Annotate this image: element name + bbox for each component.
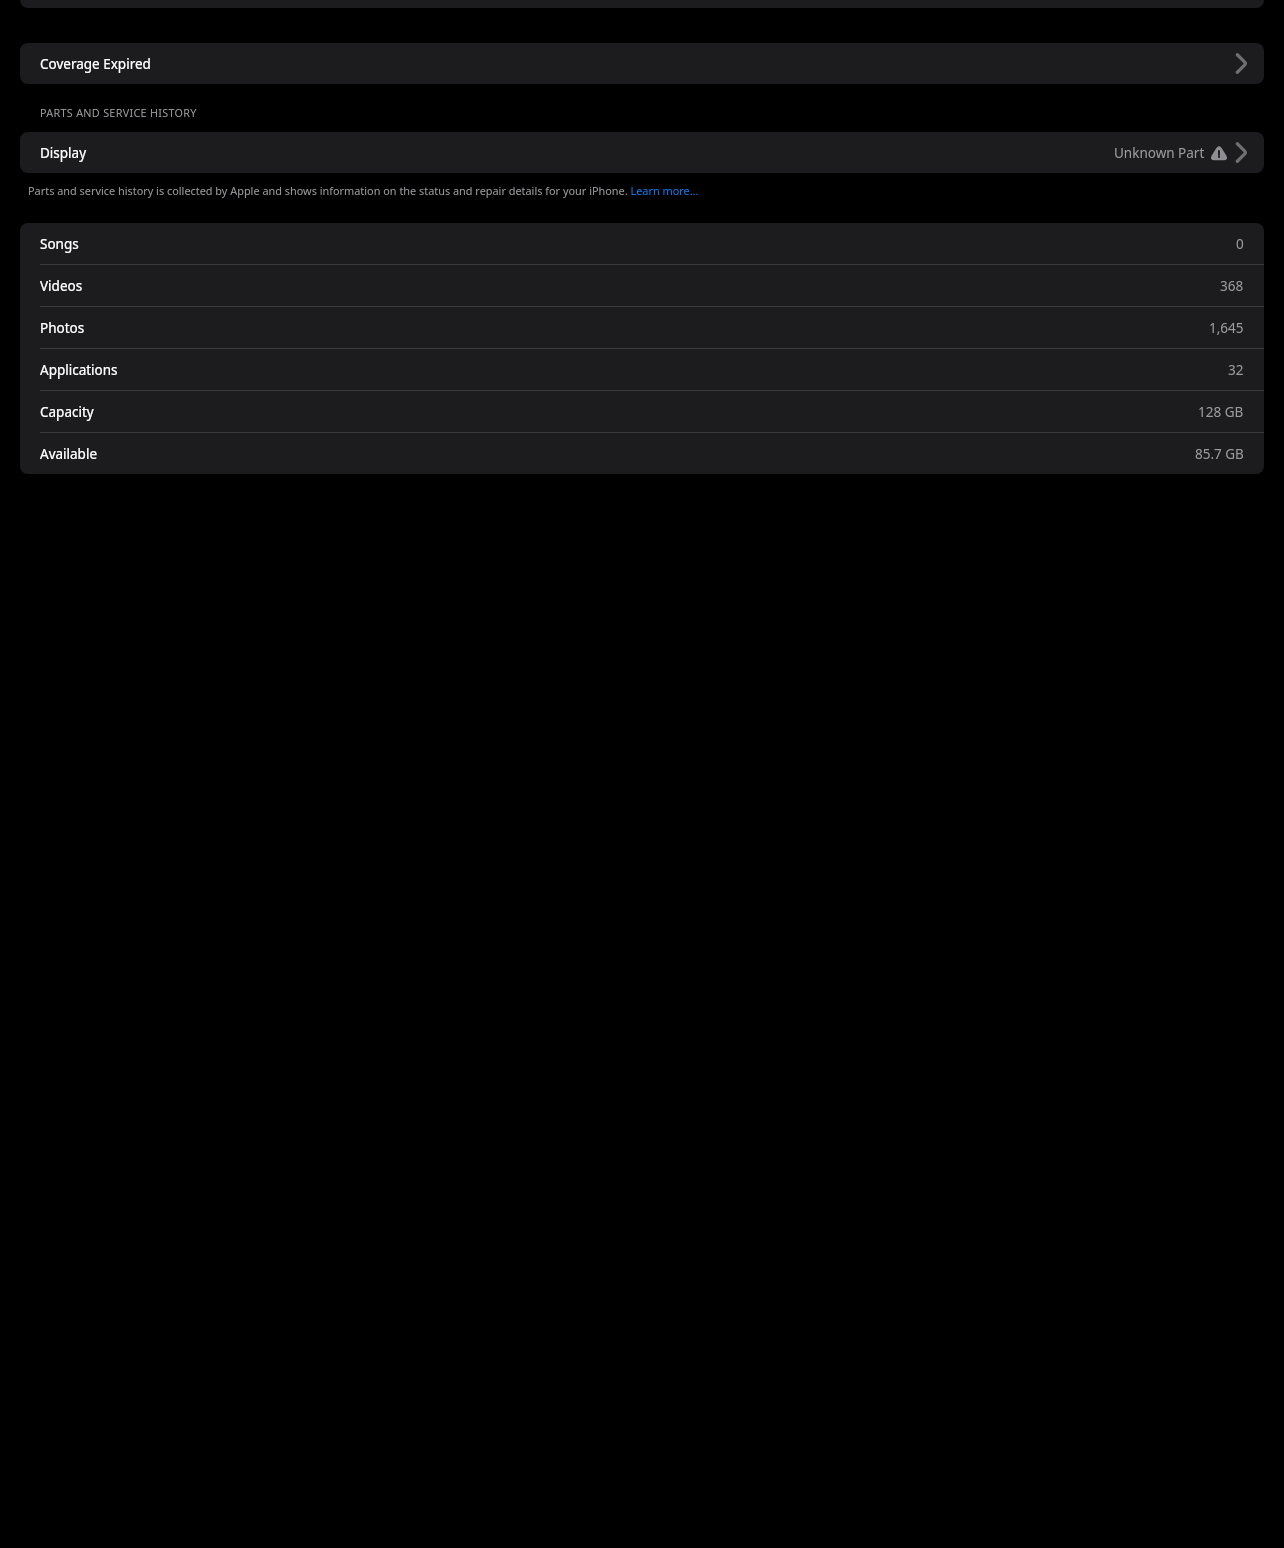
staticText: Photos <box>40 319 85 337</box>
staticText: 85.7 GB <box>1195 445 1244 463</box>
staticText: Songs <box>40 235 79 253</box>
staticText: 1,645 <box>1209 319 1244 337</box>
staticText: 128 GB <box>1198 403 1244 421</box>
staticText: Applications <box>40 361 118 379</box>
button[interactable]: Capacity <box>20 391 1264 432</box>
staticText: 32 <box>1228 361 1244 379</box>
button[interactable]: Applications <box>20 349 1264 390</box>
staticText: Videos <box>40 277 83 295</box>
button[interactable]: Available <box>20 433 1264 474</box>
button[interactable]: Videos <box>20 265 1264 306</box>
button[interactable]: Coverage Expired <box>20 43 1264 84</box>
button[interactable]: Songs <box>20 223 1264 264</box>
staticText: Display <box>40 144 87 162</box>
staticText: Unknown Part <box>1114 144 1205 162</box>
staticText: 0 <box>1236 235 1244 253</box>
button[interactable]: Photos <box>20 307 1264 348</box>
staticText: PARTS AND SERVICE HISTORY <box>40 105 197 120</box>
staticText: Coverage Expired <box>40 55 151 73</box>
button[interactable]: Display <box>20 132 1264 173</box>
staticText: Available <box>40 445 97 463</box>
staticText: 368 <box>1220 277 1244 295</box>
staticText: Capacity <box>40 403 94 421</box>
button[interactable]: Parts and service history is collected b… <box>28 183 699 198</box>
